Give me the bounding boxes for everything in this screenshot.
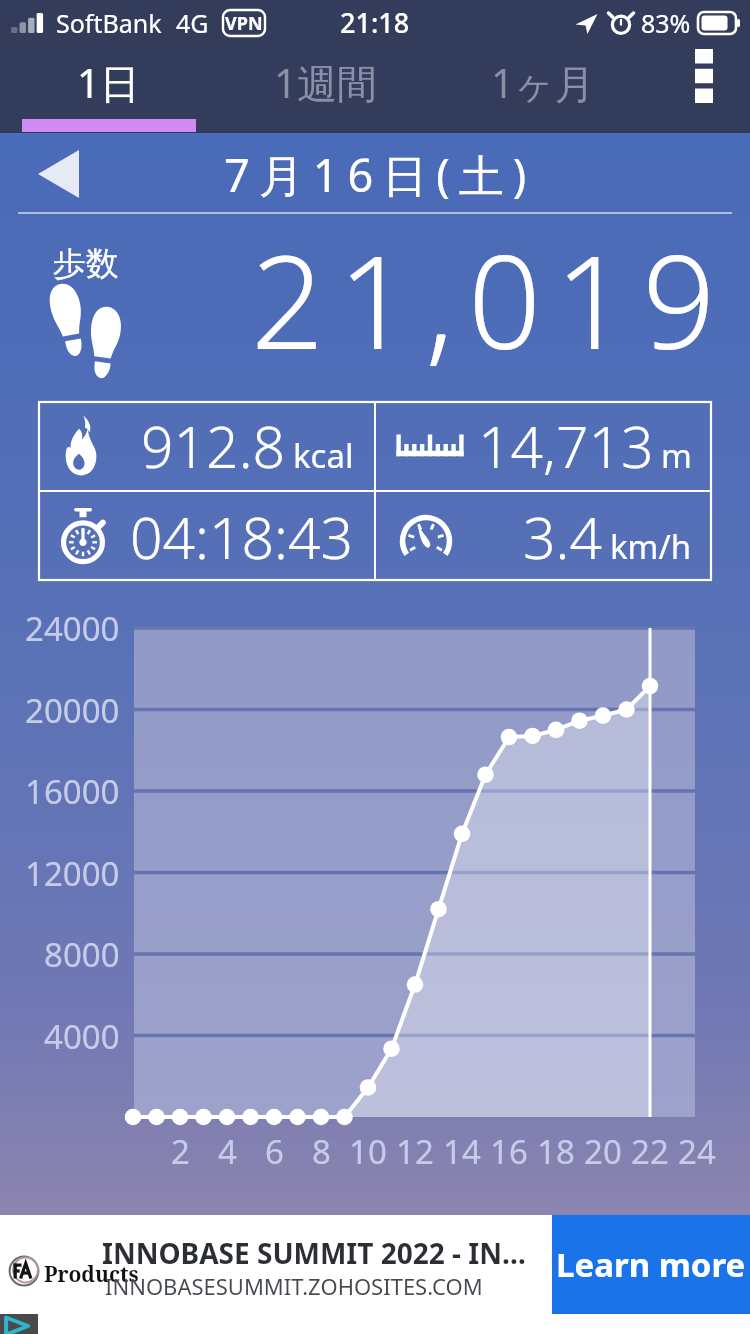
staticText: INNOBASE SUMMIT 2022 - IN…: [102, 1234, 526, 1272]
staticText: VPN: [225, 11, 263, 36]
staticText: 12000: [25, 851, 120, 896]
staticText: 24000: [25, 606, 120, 651]
staticText: 2: [171, 1129, 190, 1174]
staticText: 20: [584, 1129, 622, 1174]
staticText: 21,019: [251, 212, 730, 386]
staticText: 04:18:43: [130, 498, 354, 576]
staticText: Products: [44, 1260, 139, 1289]
button[interactable]: Previous day: [20, 141, 96, 207]
staticText: 16000: [25, 769, 120, 814]
button[interactable]: 14,713: [376, 401, 712, 490]
staticText: Learn more: [556, 1242, 746, 1287]
button[interactable]: Ad choices: [0, 1314, 38, 1334]
staticText: 21:18: [340, 4, 410, 41]
staticText: 24: [678, 1129, 716, 1174]
staticText: kcal: [293, 433, 354, 478]
staticText: 8: [312, 1129, 331, 1174]
staticText: 1ヶ月: [491, 55, 595, 110]
button[interactable]: 04:18:43: [38, 492, 374, 581]
staticText: 83%: [641, 6, 691, 40]
button[interactable]: 3.4: [376, 492, 712, 581]
button[interactable]: Learn more: [552, 1215, 750, 1314]
staticText: 歩数: [53, 243, 119, 285]
staticText: 4: [218, 1129, 237, 1174]
staticText: 4G: [176, 6, 209, 40]
staticText: 14: [443, 1129, 481, 1174]
staticText: 6: [265, 1129, 284, 1174]
staticText: 1週間: [274, 55, 377, 110]
staticText: 14,713: [478, 407, 654, 485]
staticText: 3.4: [523, 498, 603, 576]
button[interactable]: 1ヶ月: [434, 45, 651, 133]
staticText: 22: [631, 1129, 669, 1174]
button[interactable]: 1週間: [217, 45, 434, 133]
staticText: 18: [537, 1129, 575, 1174]
staticText: 16: [490, 1129, 528, 1174]
staticText: 8000: [44, 932, 120, 977]
staticText: INNOBASESUMMIT.ZOHOSITES.COM: [105, 1271, 483, 1301]
staticText: 4000: [44, 1014, 120, 1059]
staticText: 12: [396, 1129, 434, 1174]
button[interactable]: 912.8: [38, 401, 374, 490]
staticText: km/h: [610, 524, 692, 569]
staticText: 7月16日(土): [224, 144, 536, 205]
staticText: 1日: [77, 55, 140, 110]
staticText: 20000: [25, 688, 120, 733]
staticText: 912.8: [141, 407, 286, 485]
staticText: m: [661, 433, 692, 478]
button[interactable]: 1日: [0, 45, 217, 133]
staticText: 10: [349, 1129, 387, 1174]
staticText: SoftBank: [56, 6, 162, 40]
button[interactable]: More options: [651, 45, 750, 133]
